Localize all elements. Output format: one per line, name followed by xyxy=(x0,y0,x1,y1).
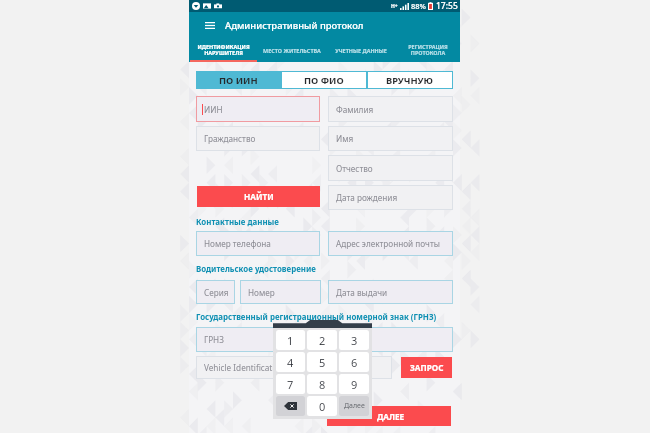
button[interactable]: 1 xyxy=(276,330,305,350)
staticText: 7 xyxy=(287,377,294,392)
staticText: Контактные данные xyxy=(196,217,279,228)
button[interactable]: Дата рождения xyxy=(328,185,453,210)
staticText: ПО ИИН xyxy=(219,74,258,87)
staticText: 4 xyxy=(287,355,294,370)
button[interactable]: Адрес электронной почты xyxy=(328,231,453,256)
staticText: Государственный регистрационный номерной… xyxy=(196,312,437,323)
staticText: Vehicle Identification Number (VIN) xyxy=(204,362,340,373)
button[interactable]: 2 xyxy=(307,330,337,350)
staticText: РЕГИСТРАЦИЯ ПРОТОКОЛА xyxy=(408,43,448,57)
button[interactable]: 8 xyxy=(307,374,337,394)
staticText: 9 xyxy=(351,377,358,392)
staticText: Серия xyxy=(204,287,229,298)
staticText: 1 xyxy=(287,333,294,348)
staticText: ГРНЗ xyxy=(204,334,224,345)
button[interactable]: Vehicle Identification Number (VIN) xyxy=(196,356,392,379)
button[interactable]: 3 xyxy=(339,330,369,350)
button[interactable]: ЗАПРОС xyxy=(401,357,452,378)
button[interactable]: Дата выдачи xyxy=(328,280,453,304)
button[interactable]: Серия xyxy=(196,280,235,304)
staticText: Имя xyxy=(336,133,354,144)
staticText: 6 xyxy=(351,355,358,370)
button[interactable]: ВРУЧНУЮ xyxy=(367,71,453,89)
staticText: Далее xyxy=(344,401,365,411)
staticText: Гражданство xyxy=(204,133,256,144)
button[interactable]: ПО ФИО xyxy=(281,71,367,89)
button[interactable]: Гражданство xyxy=(196,126,320,151)
staticText: МЕСТО ЖИТЕЛЬСТВА xyxy=(263,47,321,54)
staticText: ДАЛЕЕ xyxy=(377,411,405,422)
staticText: Дата выдачи xyxy=(336,287,388,298)
staticText: 2 xyxy=(319,333,326,348)
button[interactable]: Отчество xyxy=(328,155,453,181)
staticText: Водительское удостоверение xyxy=(196,264,316,275)
button[interactable]: 6 xyxy=(339,352,369,372)
staticText: Административный протокол xyxy=(225,19,364,32)
button[interactable]: Номер xyxy=(240,280,321,304)
staticText: Номер xyxy=(248,287,275,298)
button[interactable]: МЕСТО ЖИТЕЛЬСТВА xyxy=(258,38,325,62)
button[interactable]: Имя xyxy=(328,126,453,151)
staticText: НАЙТИ xyxy=(244,191,274,202)
staticText: 5 xyxy=(319,355,326,370)
button[interactable]: 7 xyxy=(276,374,305,394)
button[interactable]: НАЙТИ xyxy=(197,186,320,207)
staticText: ИИН xyxy=(204,104,223,115)
staticText: УЧЕТНЫЕ ДАННЫЕ xyxy=(335,47,387,54)
staticText: Адрес электронной почты xyxy=(336,238,440,249)
staticText: ПО ФИО xyxy=(304,74,344,87)
button[interactable]: ИИН xyxy=(196,96,320,122)
button[interactable]: 0 xyxy=(307,396,337,416)
button[interactable]: Open navigation menu xyxy=(197,12,223,38)
button[interactable]: ДАЛЕЕ xyxy=(327,406,451,426)
button[interactable]: 5 xyxy=(307,352,337,372)
button[interactable]: ГРНЗ xyxy=(196,327,453,352)
button[interactable]: ПО ИИН xyxy=(196,71,281,89)
staticText: ИДЕНТИФИКАЦИЯ НАРУШИТЕЛЯ xyxy=(197,43,250,57)
staticText: Отчество xyxy=(336,163,373,174)
staticText: 8 xyxy=(319,377,326,392)
button[interactable]: Номер телефона xyxy=(196,231,320,256)
staticText: Номер телефона xyxy=(204,238,271,249)
button[interactable]: Фамилия xyxy=(328,96,453,122)
button[interactable]: Далее xyxy=(339,396,369,416)
staticText: 88% xyxy=(411,1,426,11)
staticText: 0 xyxy=(319,399,326,414)
button[interactable]: ИДЕНТИФИКАЦИЯ НАРУШИТЕЛЯ xyxy=(189,38,258,62)
button[interactable]: 4 xyxy=(276,352,305,372)
button[interactable]: РЕГИСТРАЦИЯ ПРОТОКОЛА xyxy=(396,38,460,62)
button[interactable]: Backspace xyxy=(276,396,305,416)
staticText: H+ xyxy=(391,3,398,10)
button[interactable]: УЧЕТНЫЕ ДАННЫЕ xyxy=(325,38,396,62)
staticText: Фамилия xyxy=(336,104,374,115)
button[interactable]: 9 xyxy=(339,374,369,394)
staticText: Дата рождения xyxy=(336,192,398,203)
staticText: ЗАПРОС xyxy=(410,362,444,373)
staticText: 17:55 xyxy=(436,0,458,12)
staticText: ВРУЧНУЮ xyxy=(386,74,434,87)
staticText: 3 xyxy=(351,333,358,348)
